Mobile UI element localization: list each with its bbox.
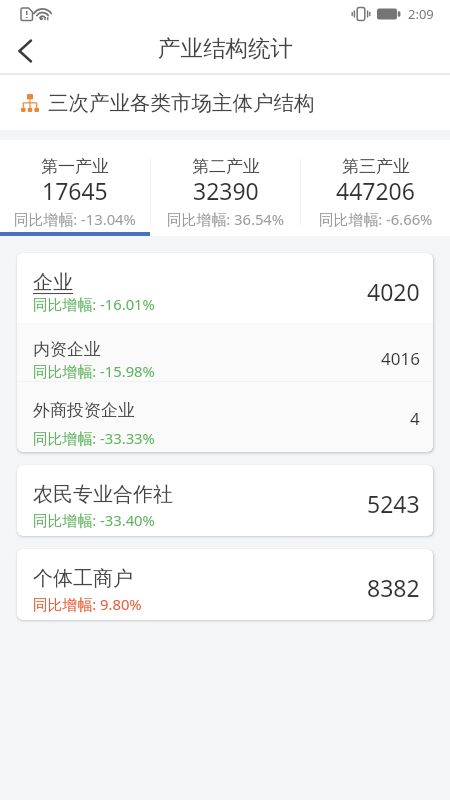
staticText: 32390 [193,175,259,206]
staticText: 同比增幅: -33.40% [33,510,155,530]
staticText: 同比增幅: -15.98% [33,361,155,381]
staticText: 同比增幅: -16.01% [33,294,155,314]
staticText: 447206 [336,175,415,206]
button[interactable]: 企业 [17,253,433,323]
button[interactable]: 外商投资企业 [17,382,433,452]
staticText: 8382 [367,572,420,603]
button[interactable]: 内资企业 [17,323,433,381]
staticText: 同比增幅: -13.04% [14,209,136,229]
staticText: 农民专业合作社 [33,482,173,507]
button[interactable]: 个体工商户 [17,549,433,620]
button[interactable]: 第三产业 [301,140,450,236]
staticText: 同比增幅: -33.33% [33,428,155,448]
staticText: 5243 [367,488,420,519]
staticText: 4020 [367,276,420,307]
staticText: 第二产业 [192,156,260,177]
staticText: 同比增幅: 36.54% [167,209,285,229]
button[interactable]: Back [0,28,46,73]
button[interactable]: 第二产业 [151,140,300,236]
staticText: 三次产业各类市场主体户结构 [48,90,315,116]
staticText: 4016 [381,347,420,370]
staticText: 内资企业 [33,339,101,360]
staticText: 第三产业 [342,156,410,177]
staticText: 17645 [42,175,108,206]
staticText: 产业结构统计 [158,34,293,62]
staticText: 第一产业 [41,156,109,177]
button[interactable]: 第一产业 [0,140,150,236]
staticText: 同比增幅: 9.80% [33,594,142,614]
staticText: 企业 [33,270,73,295]
staticText: 同比增幅: -6.66% [319,209,433,229]
staticText: 个体工商户 [33,566,133,591]
staticText: 外商投资企业 [33,400,135,421]
staticText: 2:09 [408,5,434,23]
button[interactable]: 农民专业合作社 [17,465,433,536]
staticText: 4 [410,407,420,430]
